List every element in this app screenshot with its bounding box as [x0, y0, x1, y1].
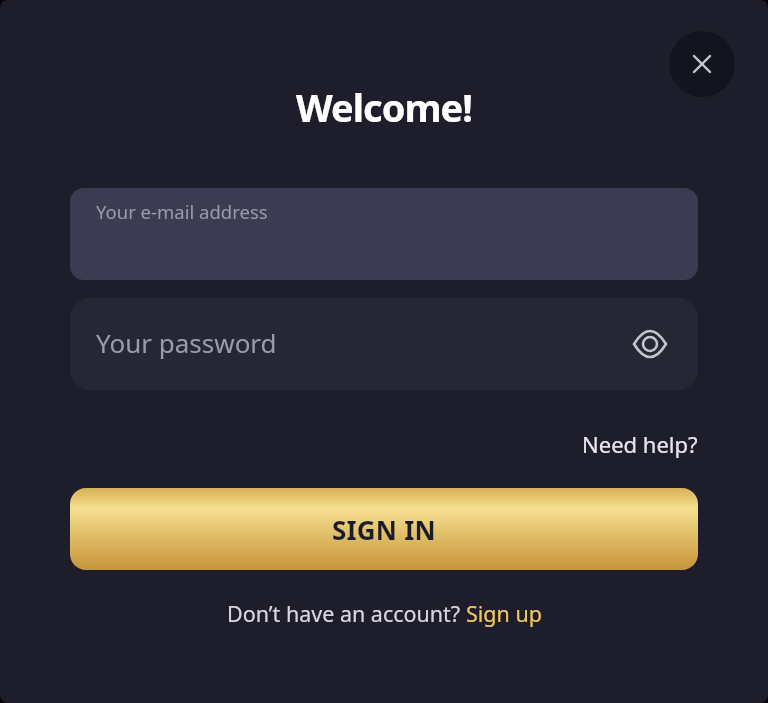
staticText: Welcome! [0, 81, 768, 133]
button[interactable] [669, 31, 735, 97]
button[interactable]: Your e-mail address [70, 188, 698, 280]
staticText: Sign up [466, 599, 542, 628]
staticText: Your e-mail address [96, 199, 268, 224]
button[interactable]: Sign up [466, 599, 542, 628]
staticText: Need help? [582, 429, 698, 459]
button[interactable]: Need help? [558, 426, 698, 462]
button[interactable]: SIGN IN [70, 488, 698, 570]
button[interactable]: Your password [70, 298, 698, 390]
staticText: Don’t have an account? [227, 599, 466, 628]
staticText: SIGN IN [332, 512, 436, 547]
staticText: Your password [96, 325, 277, 360]
